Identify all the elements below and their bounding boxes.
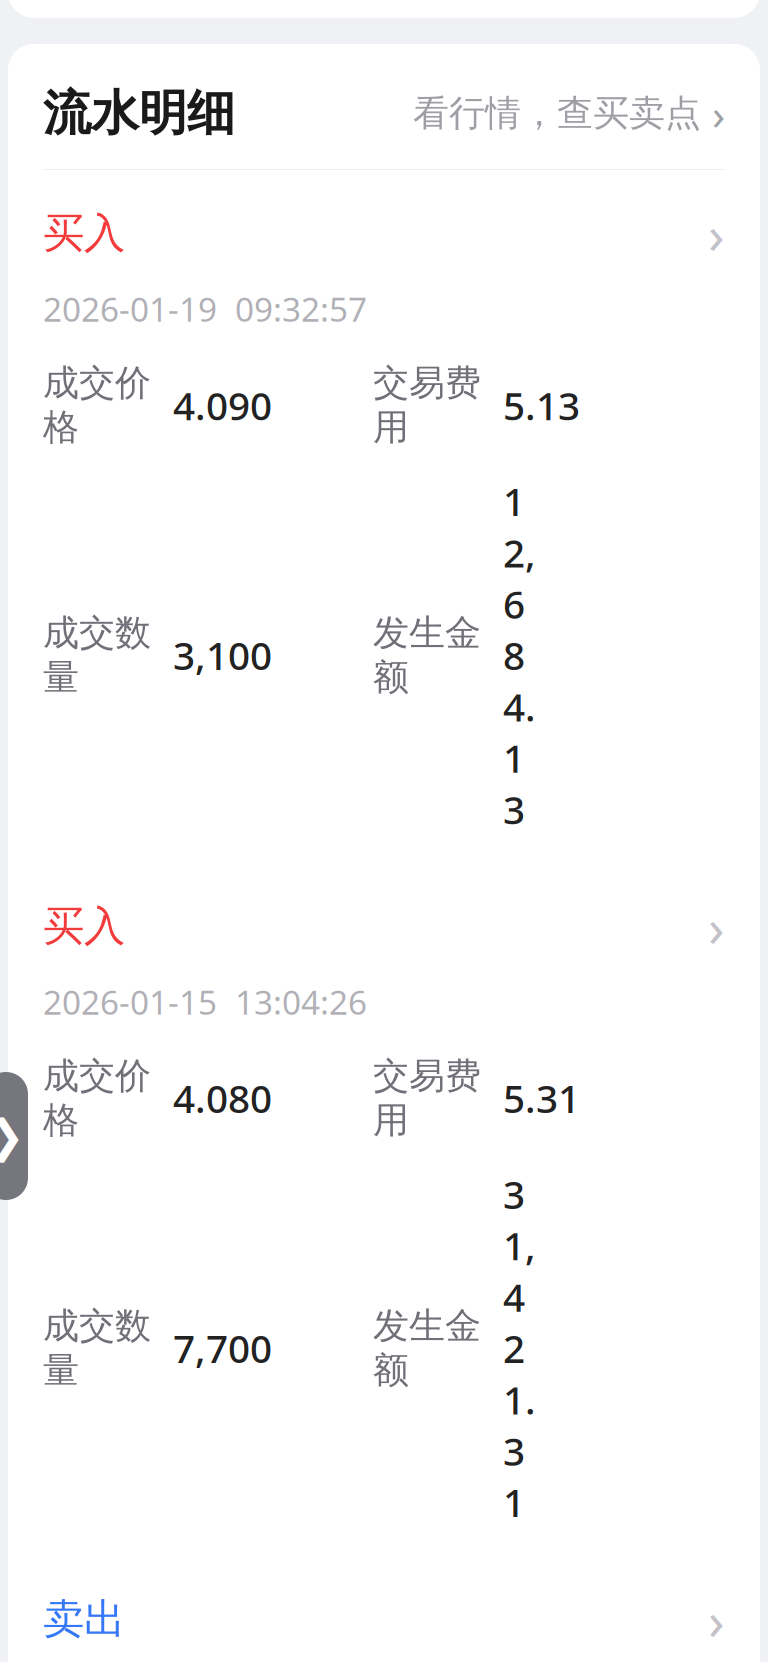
staticText: 成交价格 bbox=[43, 361, 151, 449]
staticText: 7,700 bbox=[173, 1322, 272, 1374]
staticText: 流水明细 bbox=[43, 84, 235, 143]
staticText: › bbox=[708, 891, 725, 962]
button[interactable]: 买入 bbox=[8, 863, 760, 1556]
staticText: 5.31 bbox=[503, 1072, 580, 1124]
staticText: 发生金额 bbox=[373, 611, 481, 699]
button[interactable]: Expand panel bbox=[0, 1072, 28, 1200]
staticText: 买入 bbox=[43, 901, 125, 952]
staticText: 5.13 bbox=[503, 379, 580, 431]
staticText: 成交数量 bbox=[43, 1304, 151, 1392]
staticText: 成交价格 bbox=[43, 1054, 151, 1142]
staticText: 4.080 bbox=[173, 1072, 272, 1124]
staticText: 2026-01-15 13:04:26 bbox=[43, 980, 367, 1024]
staticText: 31,421.31 bbox=[503, 1168, 536, 1528]
staticText: 看行情，查买卖点 bbox=[413, 91, 701, 135]
button[interactable]: 卖出 bbox=[8, 1556, 760, 1662]
staticText: 成交数量 bbox=[43, 611, 151, 699]
staticText: 卖出 bbox=[43, 1594, 125, 1645]
staticText: 12,684.13 bbox=[503, 475, 536, 835]
staticText: ❯ bbox=[0, 1110, 25, 1162]
button[interactable]: 流水明细 bbox=[8, 44, 760, 169]
staticText: 交易费用 bbox=[373, 1054, 481, 1142]
staticText: 买入 bbox=[43, 208, 125, 259]
staticText: › bbox=[708, 1584, 725, 1655]
staticText: 发生金额 bbox=[373, 1304, 481, 1392]
staticText: 交易费用 bbox=[373, 361, 481, 449]
staticText: 4.090 bbox=[173, 379, 272, 431]
staticText: 3,100 bbox=[173, 629, 272, 681]
button[interactable]: 买入 bbox=[8, 170, 760, 863]
staticText: 2026-01-19 09:32:57 bbox=[43, 287, 367, 331]
staticText: › bbox=[708, 198, 725, 269]
staticText: › bbox=[701, 85, 725, 142]
